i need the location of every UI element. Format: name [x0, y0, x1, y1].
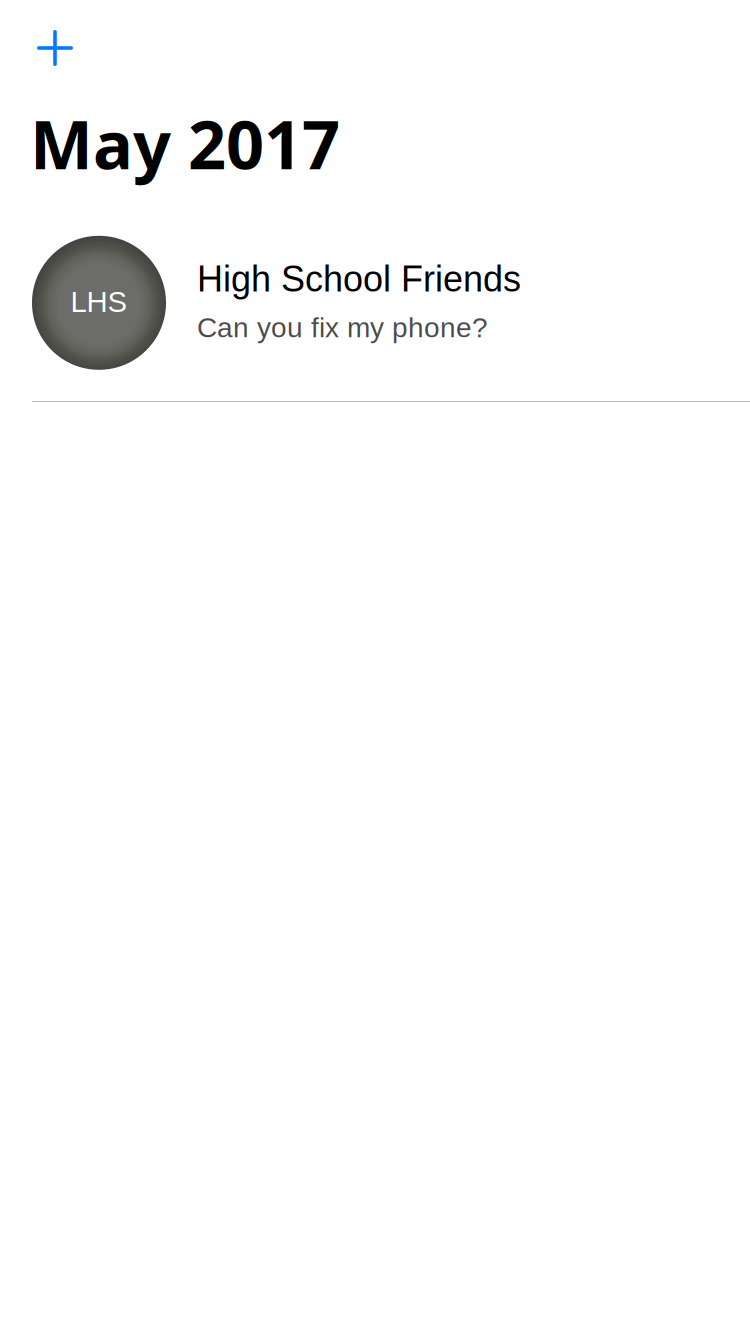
button[interactable]: LHS: [0, 189, 750, 402]
button[interactable]: New Message: [0, 0, 91, 84]
staticText: LHS: [70, 285, 127, 318]
staticText: May 2017: [30, 98, 340, 189]
staticText: Can you fix my phone?: [197, 312, 488, 343]
staticText: High School Friends: [197, 259, 521, 299]
